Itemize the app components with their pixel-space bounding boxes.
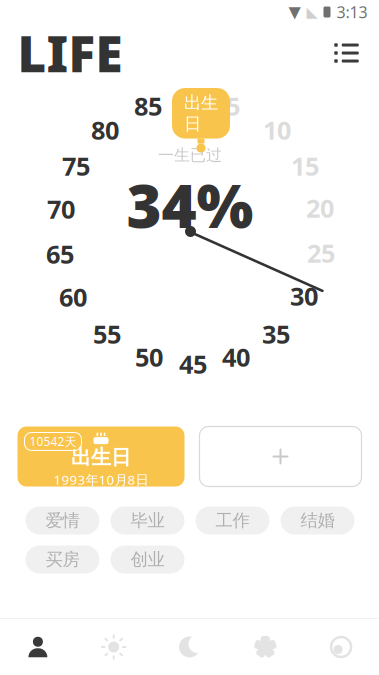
- staticText: 10542天: [29, 433, 76, 449]
- staticText: LIFE: [17, 20, 122, 86]
- staticText: 55: [93, 317, 121, 351]
- staticText: 15: [291, 149, 319, 183]
- button[interactable]: List: [323, 30, 369, 76]
- staticText: 50: [135, 340, 163, 374]
- button[interactable]: 出生日: [17, 426, 184, 486]
- staticText: 20: [306, 191, 334, 225]
- staticText: 毕业: [130, 510, 164, 531]
- staticText: 10: [263, 113, 291, 147]
- button[interactable]: 爱情: [25, 506, 99, 534]
- staticText: ◣: [306, 4, 317, 20]
- button[interactable]: Favorites: [227, 619, 303, 675]
- button[interactable]: Day: [76, 619, 152, 675]
- staticText: ▼: [288, 3, 300, 21]
- staticText: 结婚: [300, 510, 334, 531]
- button[interactable]: World: [303, 619, 379, 675]
- staticText: 35: [262, 317, 290, 351]
- staticText: 5: [226, 89, 240, 123]
- staticText: 30: [290, 279, 318, 313]
- button[interactable]: 毕业: [110, 506, 184, 534]
- button[interactable]: Add event: [199, 426, 361, 486]
- staticText: 80: [91, 113, 119, 147]
- button[interactable]: 工作: [195, 506, 269, 534]
- button[interactable]: Night: [152, 619, 227, 675]
- button[interactable]: 创业: [110, 545, 184, 573]
- staticText: 65: [46, 237, 74, 271]
- staticText: 40: [222, 340, 250, 374]
- staticText: 34%: [126, 165, 253, 245]
- staticText: 85: [134, 89, 162, 123]
- staticText: 出生日: [71, 445, 131, 470]
- button[interactable]: Profile: [0, 619, 76, 675]
- button[interactable]: 结婚: [280, 506, 354, 534]
- staticText: 70: [47, 192, 75, 226]
- button[interactable]: 买房: [25, 545, 99, 573]
- staticText: 创业: [130, 549, 164, 570]
- staticText: 买房: [45, 549, 79, 570]
- staticText: 45: [179, 347, 207, 381]
- staticText: 75: [62, 149, 90, 183]
- staticText: 60: [59, 280, 87, 314]
- staticText: 1993年10月8日: [53, 471, 148, 488]
- staticText: 出生日: [184, 92, 218, 135]
- staticText: 25: [307, 236, 335, 270]
- staticText: 一生已过: [158, 145, 222, 165]
- staticText: 爱情: [45, 510, 79, 531]
- staticText: 3:13: [336, 1, 367, 23]
- staticText: 工作: [215, 510, 249, 531]
